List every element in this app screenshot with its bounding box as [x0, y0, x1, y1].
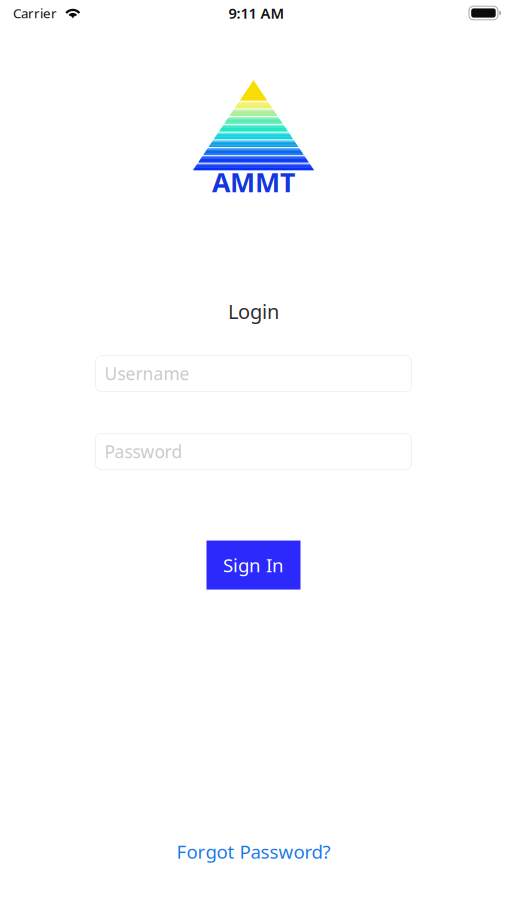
staticText: AMMT [212, 164, 295, 200]
staticText: Forgot Password? [176, 839, 330, 864]
staticText: Password [104, 440, 182, 463]
staticText: Login [228, 298, 279, 325]
staticText: 9:11 AM [228, 3, 284, 23]
button[interactable]: Username [95, 356, 411, 392]
button[interactable]: Forgot Password? [176, 839, 330, 864]
staticText: Carrier [13, 4, 57, 22]
staticText: Sign In [223, 553, 284, 577]
button[interactable]: Sign In [206, 541, 300, 590]
staticText: Username [104, 362, 189, 385]
button[interactable]: Password [95, 434, 411, 470]
